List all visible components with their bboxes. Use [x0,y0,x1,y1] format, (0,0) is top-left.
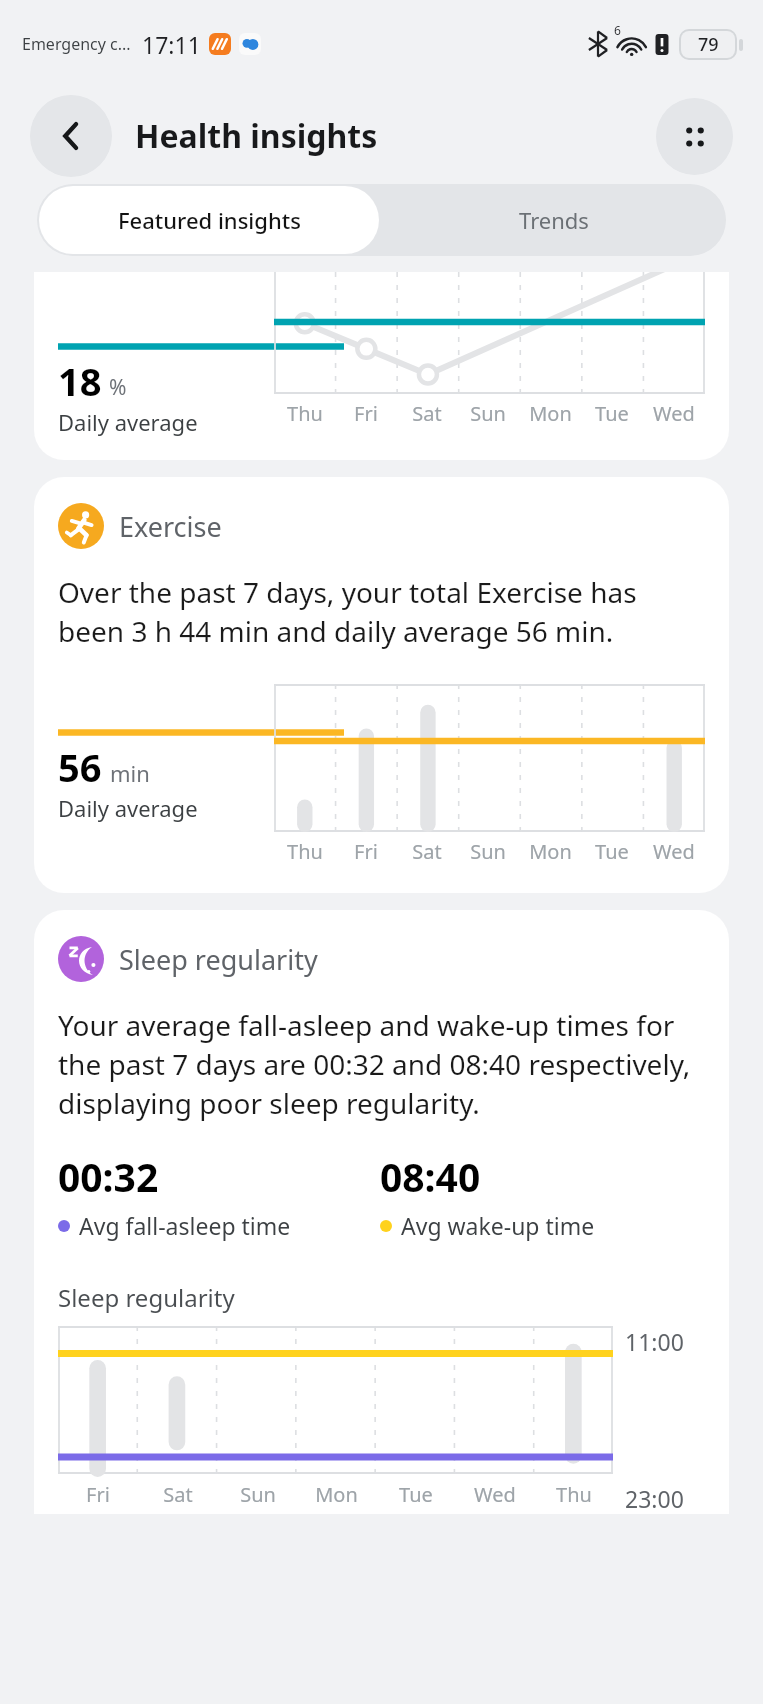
staticText: Tue [595,400,629,427]
staticText: Mon [529,838,572,865]
staticText: Thu [287,400,323,427]
staticText: Mon [315,1481,358,1508]
staticText: Sat [163,1481,193,1508]
staticText: Mon [529,400,572,427]
staticText: Sleep regularity [58,1281,235,1314]
staticText: Sleep regularity [119,941,318,978]
staticText: Tue [399,1481,433,1508]
staticText: Avg fall-asleep time [79,1210,291,1241]
button[interactable]: Trends [381,184,726,256]
staticText: Emergency c... [22,33,131,55]
staticText: Fri [354,400,378,427]
button[interactable]: Featured insights [39,186,379,254]
staticText: Fri [354,838,378,865]
staticText: Featured insights [118,205,301,235]
staticText: Sun [240,1481,276,1508]
staticText: 6 [614,22,621,38]
staticText: Your average fall-asleep and wake-up tim… [58,1006,705,1122]
button[interactable]: More options [656,98,733,175]
button[interactable]: Back [30,95,112,177]
staticText: 00:32 [58,1150,159,1203]
staticText: Tue [595,838,629,865]
staticText: Wed [653,838,695,865]
staticText: Sun [470,400,506,427]
staticText: Over the past 7 days, your total Exercis… [58,573,705,650]
staticText: 17:11 [142,29,201,60]
staticText: 23:00 [625,1483,684,1514]
staticText: Fri [86,1481,110,1508]
staticText: Sat [412,400,442,427]
staticText: 18 [58,355,102,407]
button[interactable]: Exercise [34,477,729,893]
staticText: Thu [287,838,323,865]
button[interactable]: 18 [34,272,729,460]
staticText: 79 [698,32,719,57]
staticText: Trends [519,205,589,235]
button[interactable]: Sleep regularity [34,910,729,1514]
staticText: Daily average [58,793,198,823]
staticText: 56 [58,741,102,793]
staticText: 11:00 [625,1326,684,1357]
staticText: Avg wake-up time [401,1210,595,1241]
staticText: Daily average [58,407,198,437]
staticText: Wed [653,400,695,427]
staticText: Health insights [135,114,378,158]
staticText: 08:40 [380,1150,481,1203]
staticText: Exercise [119,508,222,545]
staticText: % [109,373,127,402]
staticText: Sat [412,838,442,865]
staticText: Wed [474,1481,516,1508]
staticText: Sun [470,838,506,865]
staticText: Thu [556,1481,592,1508]
staticText: min [110,758,150,788]
